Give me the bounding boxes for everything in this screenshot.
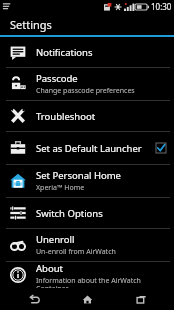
- staticText: Switch Options: [36, 207, 103, 220]
- staticText: About: [36, 262, 63, 275]
- staticText: Set as Default Launcher: [36, 142, 142, 155]
- staticText: Notifications: [36, 46, 93, 59]
- button[interactable]: Set Personal Home: [0, 165, 174, 197]
- button[interactable]: Recent apps: [121, 288, 161, 310]
- button[interactable]: Home: [67, 288, 107, 310]
- button[interactable]: Switch Options: [0, 198, 174, 228]
- button[interactable]: Set as Default Launcher: [0, 132, 174, 164]
- staticText: Un-enroll from AirWatch: [36, 247, 116, 257]
- staticText: 10:30: [151, 1, 172, 12]
- staticText: Troubleshoot: [36, 110, 96, 123]
- staticText: Information about the AirWatch Container: [36, 276, 166, 288]
- button[interactable]: Unenroll: [0, 229, 174, 261]
- button[interactable]: Passcode: [0, 68, 174, 100]
- button[interactable]: Back: [14, 288, 54, 310]
- staticText: Passcode: [36, 72, 78, 85]
- staticText: Unenroll: [36, 233, 75, 246]
- staticText: Change passcode preferences: [36, 86, 135, 96]
- button[interactable]: Notifications: [0, 37, 174, 67]
- button[interactable]: About: [0, 262, 174, 288]
- button[interactable]: Troubleshoot: [0, 101, 174, 131]
- staticText: Settings: [10, 17, 52, 32]
- staticText: Xperia™ Home: [36, 183, 85, 193]
- button[interactable]: Set as Default Launcher toggle: [156, 143, 166, 153]
- staticText: Set Personal Home: [36, 169, 121, 182]
